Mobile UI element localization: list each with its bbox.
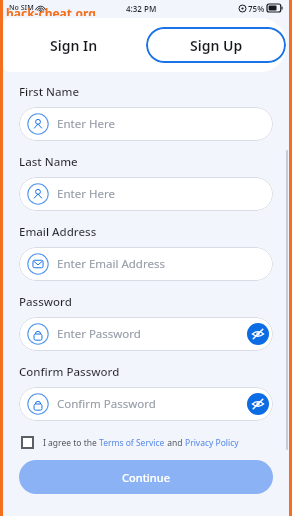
button[interactable]: Confirm Password — [19, 387, 273, 421]
staticText: Sign Up — [190, 36, 243, 55]
button[interactable]: Agree to terms checkbox — [19, 436, 273, 449]
staticText: and — [165, 437, 185, 449]
staticText: First Name — [19, 84, 80, 100]
staticText: Password — [19, 294, 72, 310]
staticText: Enter Email Address — [57, 256, 165, 272]
staticText: 4:32 PM — [126, 3, 157, 14]
button[interactable]: Enter Email Address — [19, 247, 273, 281]
staticText: Enter Password — [57, 326, 141, 342]
staticText: 75% — [248, 3, 265, 14]
staticText: hack-cheat.org — [6, 5, 96, 16]
staticText: I agree to the — [43, 437, 99, 449]
staticText: Confirm Password — [57, 396, 156, 412]
staticText: Enter Here — [57, 116, 115, 132]
staticText: Confirm Password — [19, 364, 120, 380]
button[interactable]: Enter Password — [19, 317, 273, 351]
button[interactable]: Terms of Service — [99, 437, 165, 449]
button[interactable]: Privacy Policy — [185, 437, 239, 449]
staticText: Sign In — [50, 36, 98, 55]
staticText: Enter Here — [57, 186, 115, 202]
staticText: Last Name — [19, 154, 78, 170]
staticText: Email Address — [19, 224, 97, 240]
button[interactable]: Enter Here — [19, 177, 273, 211]
staticText: No SIM — [9, 3, 34, 13]
button[interactable]: Sign Up — [146, 27, 286, 63]
button[interactable]: Show password — [247, 323, 269, 345]
button[interactable]: Continue — [19, 460, 273, 494]
button[interactable]: Show password — [247, 393, 269, 415]
button[interactable]: Sign In — [3, 18, 145, 72]
button[interactable]: Agree to terms checkbox — [21, 436, 34, 449]
staticText: Continue — [122, 470, 170, 485]
button[interactable]: Enter Here — [19, 107, 273, 141]
